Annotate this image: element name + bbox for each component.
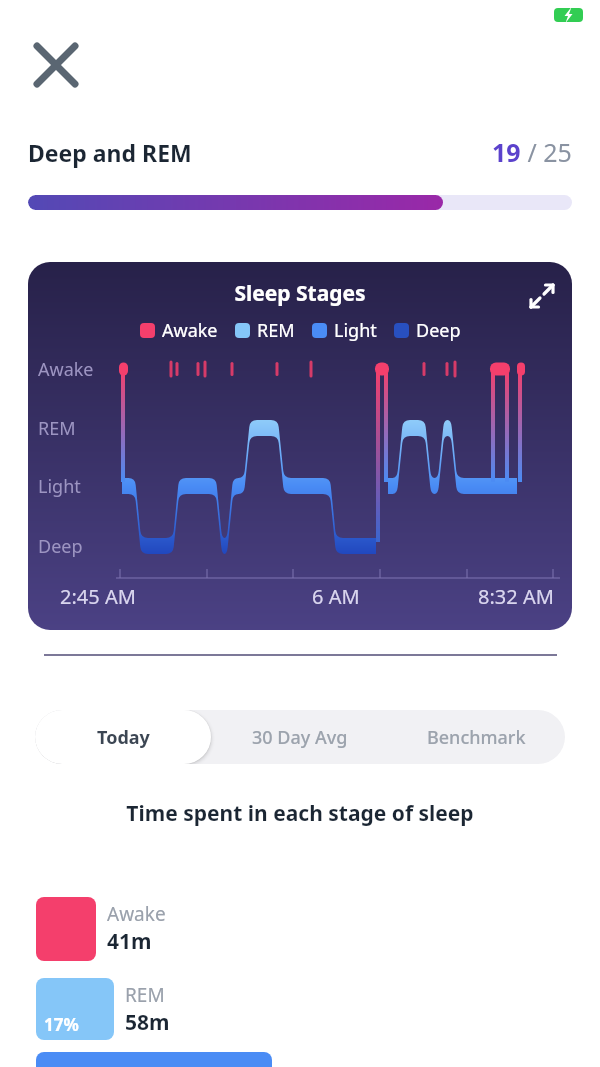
staticText: Time spent in each stage of sleep <box>0 799 600 828</box>
button[interactable]: 30 Day Avg <box>211 710 388 764</box>
staticText: Deep <box>416 318 461 343</box>
staticText: REM <box>125 982 165 1008</box>
staticText: 2:45 AM <box>60 583 136 610</box>
staticText: 8:32 AM <box>478 583 554 610</box>
staticText: 58m <box>125 1008 170 1037</box>
staticText: Sleep Stages <box>28 279 572 308</box>
staticText: Light <box>334 318 377 343</box>
button[interactable]: Benchmark <box>388 710 565 764</box>
button[interactable] <box>36 897 96 961</box>
staticText: REM <box>38 416 76 441</box>
button[interactable]: Sleep Stages <box>28 262 572 630</box>
staticText: Awake <box>38 357 94 382</box>
button[interactable]: Today <box>35 710 211 764</box>
staticText: / 25 <box>521 135 572 169</box>
staticText: Awake <box>107 901 166 927</box>
button[interactable]: 17% <box>36 978 114 1040</box>
staticText: Awake <box>162 318 218 343</box>
staticText: Light <box>38 474 81 499</box>
staticText: Deep and REM <box>28 137 192 168</box>
staticText: Benchmark <box>427 725 526 750</box>
staticText: 41m <box>107 927 152 956</box>
staticText: Today <box>97 725 150 750</box>
staticText: REM <box>257 318 295 343</box>
staticText: 30 Day Avg <box>252 725 348 750</box>
staticText: Deep <box>38 534 83 559</box>
staticText: 19 <box>492 135 521 169</box>
staticText: 6 AM <box>312 583 360 610</box>
staticText: 17% <box>44 1013 79 1036</box>
button[interactable] <box>26 35 86 95</box>
button[interactable] <box>36 1052 272 1067</box>
